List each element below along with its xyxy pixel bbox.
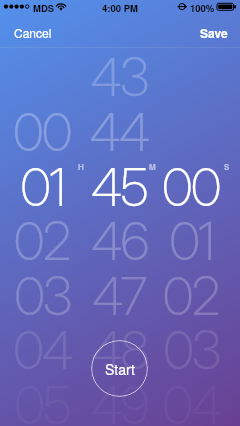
button[interactable]: 43 [85, 45, 153, 99]
button[interactable]: 46 [85, 209, 153, 263]
staticText: 45 [91, 155, 147, 209]
staticText: 48 [91, 318, 148, 372]
staticText: 49 [91, 373, 148, 426]
staticText: 01 [169, 209, 214, 263]
button[interactable]: 05 [8, 373, 76, 426]
button[interactable]: 48 [85, 318, 153, 372]
staticText: Cancel [14, 24, 52, 41]
button[interactable]: 03 [157, 318, 225, 372]
staticText: 4:00 PM [102, 1, 138, 15]
button[interactable]: 45 [85, 155, 153, 209]
staticText: 100% [190, 1, 215, 15]
staticText: 04 [13, 318, 72, 372]
button[interactable]: 01 [8, 155, 76, 209]
staticText: 46 [91, 209, 148, 263]
button[interactable]: 04 [157, 373, 225, 426]
staticText: Start [105, 359, 135, 379]
staticText: 47 [92, 264, 146, 318]
button[interactable]: 01 [157, 209, 225, 263]
button[interactable]: 00 [8, 100, 76, 154]
staticText: 01 [20, 155, 65, 209]
staticText: 03 [14, 264, 71, 318]
staticText: MDS [33, 1, 55, 15]
button[interactable]: 02 [157, 264, 225, 318]
button[interactable]: 47 [85, 264, 153, 318]
button[interactable]: Save [194, 17, 234, 48]
button[interactable]: 02 [8, 209, 76, 263]
button[interactable]: 00 [157, 155, 225, 209]
staticText: Save [200, 24, 228, 41]
button[interactable]: Cancel [7, 17, 59, 48]
staticText: 04 [162, 373, 221, 426]
staticText: 05 [14, 373, 70, 426]
staticText: 02 [14, 209, 70, 263]
staticText: M [149, 161, 156, 172]
staticText: H [78, 161, 84, 172]
staticText: S [224, 161, 230, 172]
button[interactable]: 04 [8, 318, 76, 372]
button[interactable]: 03 [8, 264, 76, 318]
staticText: 43 [90, 45, 148, 99]
button[interactable]: 44 [85, 100, 153, 154]
staticText: 00 [13, 100, 71, 154]
staticText: 44 [89, 100, 149, 154]
staticText: 02 [163, 264, 219, 318]
button[interactable]: 49 [85, 373, 153, 426]
button[interactable]: Start [91, 340, 148, 397]
staticText: 03 [163, 318, 220, 372]
staticText: 00 [162, 155, 220, 209]
